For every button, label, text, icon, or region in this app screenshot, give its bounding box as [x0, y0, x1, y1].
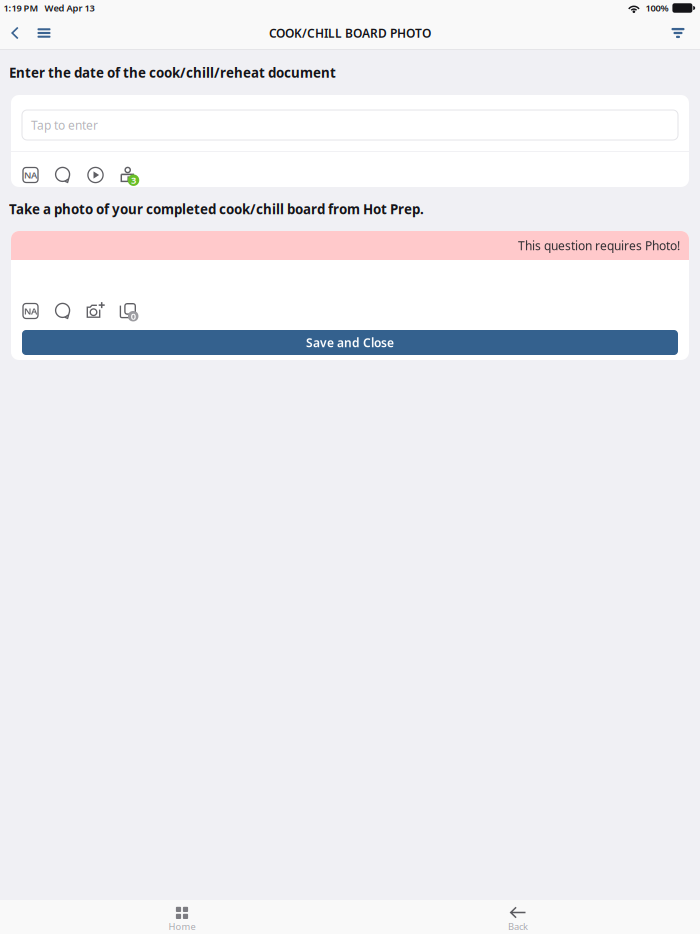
button[interactable]: Action — [84, 164, 106, 186]
staticText: 100% — [645, 2, 668, 14]
button[interactable]: Back — [1, 16, 29, 50]
staticText: This question requires Photo! — [518, 237, 680, 253]
button[interactable]: Attachments — [117, 164, 139, 186]
button[interactable]: Menu — [29, 16, 59, 50]
staticText: 0 — [131, 310, 136, 322]
button[interactable]: Not applicable — [19, 164, 41, 186]
staticText: NA — [24, 169, 37, 181]
button[interactable]: Home — [112, 900, 252, 934]
staticText: Save and Close — [306, 334, 394, 350]
button[interactable]: Not applicable — [19, 300, 41, 322]
staticText: Home — [168, 920, 195, 933]
button[interactable]: Comment — [52, 300, 74, 322]
button[interactable]: Attachments — [117, 300, 139, 322]
staticText: 3 — [131, 174, 136, 186]
staticText: COOK/CHILL BOARD PHOTO — [269, 25, 431, 41]
staticText: 1:19 PM — [3, 2, 38, 14]
button[interactable]: Action — [84, 300, 106, 322]
staticText: NA — [24, 305, 37, 317]
staticText: Wed Apr 13 — [44, 2, 94, 14]
button[interactable]: Comment — [52, 164, 74, 186]
button[interactable]: Save and Close — [22, 330, 678, 355]
staticText: Take a photo of your completed cook/chil… — [9, 200, 424, 218]
staticText: Enter the date of the cook/chill/reheat … — [9, 64, 336, 81]
button[interactable]: Back — [448, 900, 588, 934]
staticText: Tap to enter — [31, 117, 98, 133]
staticText: Back — [508, 920, 528, 933]
button[interactable]: Filter — [662, 16, 694, 50]
